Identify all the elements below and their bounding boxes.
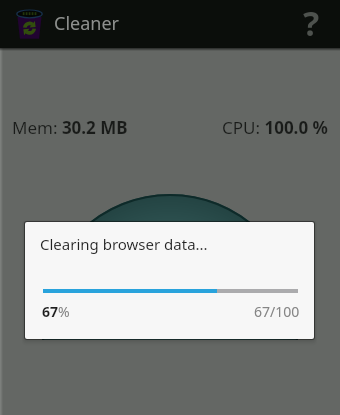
staticText: 67% <box>42 302 70 321</box>
staticText: Mem: 30.2 MB <box>12 116 128 139</box>
staticText: ? <box>303 0 320 46</box>
button[interactable]: Help <box>296 0 340 48</box>
staticText: CPU: 100.0 % <box>222 116 328 139</box>
staticText: 67/100 <box>254 302 300 321</box>
staticText: Cleaner <box>54 11 119 36</box>
staticText: Clearing browser data... <box>40 234 208 254</box>
